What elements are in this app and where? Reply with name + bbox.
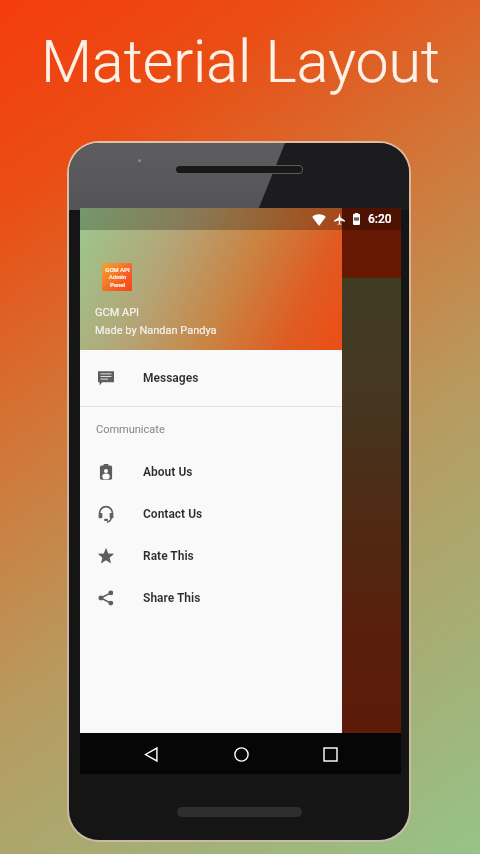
button[interactable]: Rate This [80,535,342,577]
staticText: GCM API [95,306,140,319]
button[interactable]: GCM API Admin Panel [102,263,132,291]
staticText: Material Layout [41,27,440,96]
button[interactable]: About Us [80,451,342,493]
button[interactable]: Back [133,736,169,772]
button[interactable]: Recent apps [312,736,348,772]
staticText: 6:20 [368,212,392,226]
staticText: Share This [143,591,201,605]
button[interactable]: Home [223,736,259,772]
staticText: Rate This [143,549,194,563]
staticText: Messages [143,371,199,385]
staticText: Contact Us [143,507,203,521]
staticText: GCM API Admin Panel [105,266,130,289]
button[interactable]: GCM API Admin Panel [80,208,342,350]
staticText: About Us [143,465,193,479]
button[interactable]: Contact Us [80,493,342,535]
button[interactable]: Share This [80,577,342,619]
button[interactable]: Messages [80,350,342,406]
staticText: Communicate [96,423,165,436]
staticText: Made by Nandan Pandya [95,324,217,337]
